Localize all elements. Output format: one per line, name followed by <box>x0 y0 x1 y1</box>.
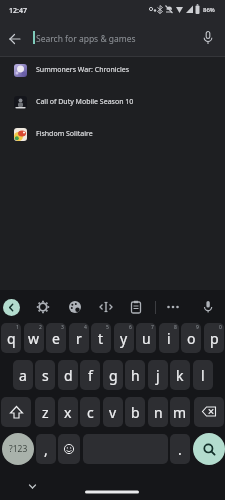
staticText: 6 <box>129 324 132 331</box>
staticText: . <box>178 440 182 459</box>
button[interactable]: f <box>80 360 100 390</box>
button[interactable]: k <box>170 360 190 390</box>
button[interactable]: b <box>125 397 145 427</box>
button[interactable]: o <box>181 323 201 353</box>
staticText: x <box>64 403 72 422</box>
staticText: a <box>19 366 27 385</box>
button[interactable] <box>129 300 143 314</box>
button[interactable]: s <box>35 360 55 390</box>
staticText: 0 <box>219 324 222 331</box>
button[interactable]: c <box>80 397 100 427</box>
button[interactable]: y <box>114 323 134 353</box>
staticText: p <box>210 329 219 348</box>
staticText: e <box>52 329 60 348</box>
button[interactable] <box>58 434 80 464</box>
button[interactable]: ?123 <box>2 433 34 465</box>
button[interactable]: . <box>170 434 190 464</box>
button[interactable]: a <box>13 360 33 390</box>
button[interactable]: z <box>35 397 55 427</box>
staticText: h <box>131 366 140 385</box>
staticText: r <box>76 329 82 348</box>
staticText: 4 <box>84 324 87 331</box>
staticText: z <box>42 403 49 422</box>
button[interactable]: Call of Duty Mobile Season 10 <box>0 89 225 121</box>
button[interactable] <box>9 33 21 45</box>
button[interactable]: l <box>193 360 213 390</box>
staticText: 3 <box>61 324 64 331</box>
button[interactable] <box>193 433 225 465</box>
staticText: 5 <box>106 324 109 331</box>
staticText: , <box>44 440 48 459</box>
button[interactable]: Search for apps & games <box>36 33 136 45</box>
staticText: u <box>142 329 151 348</box>
staticText: y <box>120 329 128 348</box>
staticText: n <box>154 403 163 422</box>
button[interactable]: r <box>69 323 89 353</box>
staticText: 7 <box>151 324 154 331</box>
button[interactable] <box>166 300 180 314</box>
button[interactable] <box>194 397 224 427</box>
button[interactable]: i <box>159 323 179 353</box>
button[interactable]: n <box>148 397 168 427</box>
button[interactable]: m <box>170 397 190 427</box>
staticText: k <box>176 366 184 385</box>
staticText: ?123 <box>9 443 28 455</box>
staticText: 2 <box>39 324 42 331</box>
staticText: Fishdom Solitaire <box>36 129 93 139</box>
button[interactable]: Summoners War: Chronicles <box>0 57 225 89</box>
staticText: g <box>109 366 118 385</box>
button[interactable]: x <box>58 397 78 427</box>
staticText: 8 <box>174 324 177 331</box>
staticText: v <box>109 403 117 422</box>
button[interactable]: j <box>148 360 168 390</box>
staticText: 12:47 <box>9 6 27 16</box>
staticText: s <box>42 366 49 385</box>
button[interactable] <box>99 300 113 314</box>
button[interactable] <box>3 299 20 316</box>
button[interactable] <box>36 300 50 314</box>
button[interactable]: e <box>46 323 66 353</box>
staticText: d <box>64 366 73 385</box>
button[interactable]: Fishdom Solitaire <box>0 121 225 153</box>
button[interactable]: u <box>136 323 156 353</box>
button[interactable]: w <box>24 323 44 353</box>
staticText: Summoners War: Chronicles <box>36 65 130 75</box>
staticText: 86% <box>203 6 215 14</box>
staticText: w <box>28 329 40 348</box>
button[interactable] <box>200 30 216 46</box>
staticText: t <box>98 329 104 348</box>
staticText: j <box>156 366 160 385</box>
staticText: q <box>7 329 16 348</box>
button[interactable]: q <box>1 323 21 353</box>
staticText: m <box>173 403 187 422</box>
staticText: c <box>87 403 94 422</box>
staticText: l <box>201 366 205 385</box>
staticText: f <box>88 366 93 385</box>
button[interactable] <box>1 397 31 427</box>
staticText: i <box>167 329 171 348</box>
button[interactable]: v <box>103 397 123 427</box>
button[interactable]: t <box>91 323 111 353</box>
button[interactable] <box>201 300 215 314</box>
staticText: b <box>131 403 140 422</box>
staticText: Call of Duty Mobile Season 10 <box>36 97 134 107</box>
button[interactable]: d <box>58 360 78 390</box>
button[interactable] <box>68 300 82 314</box>
staticText: 1 <box>16 324 19 331</box>
button[interactable]: g <box>103 360 123 390</box>
staticText: o <box>187 329 196 348</box>
button[interactable]: p <box>204 323 224 353</box>
staticText: 9 <box>196 324 199 331</box>
button[interactable]: , <box>36 434 56 464</box>
button[interactable]: h <box>125 360 145 390</box>
